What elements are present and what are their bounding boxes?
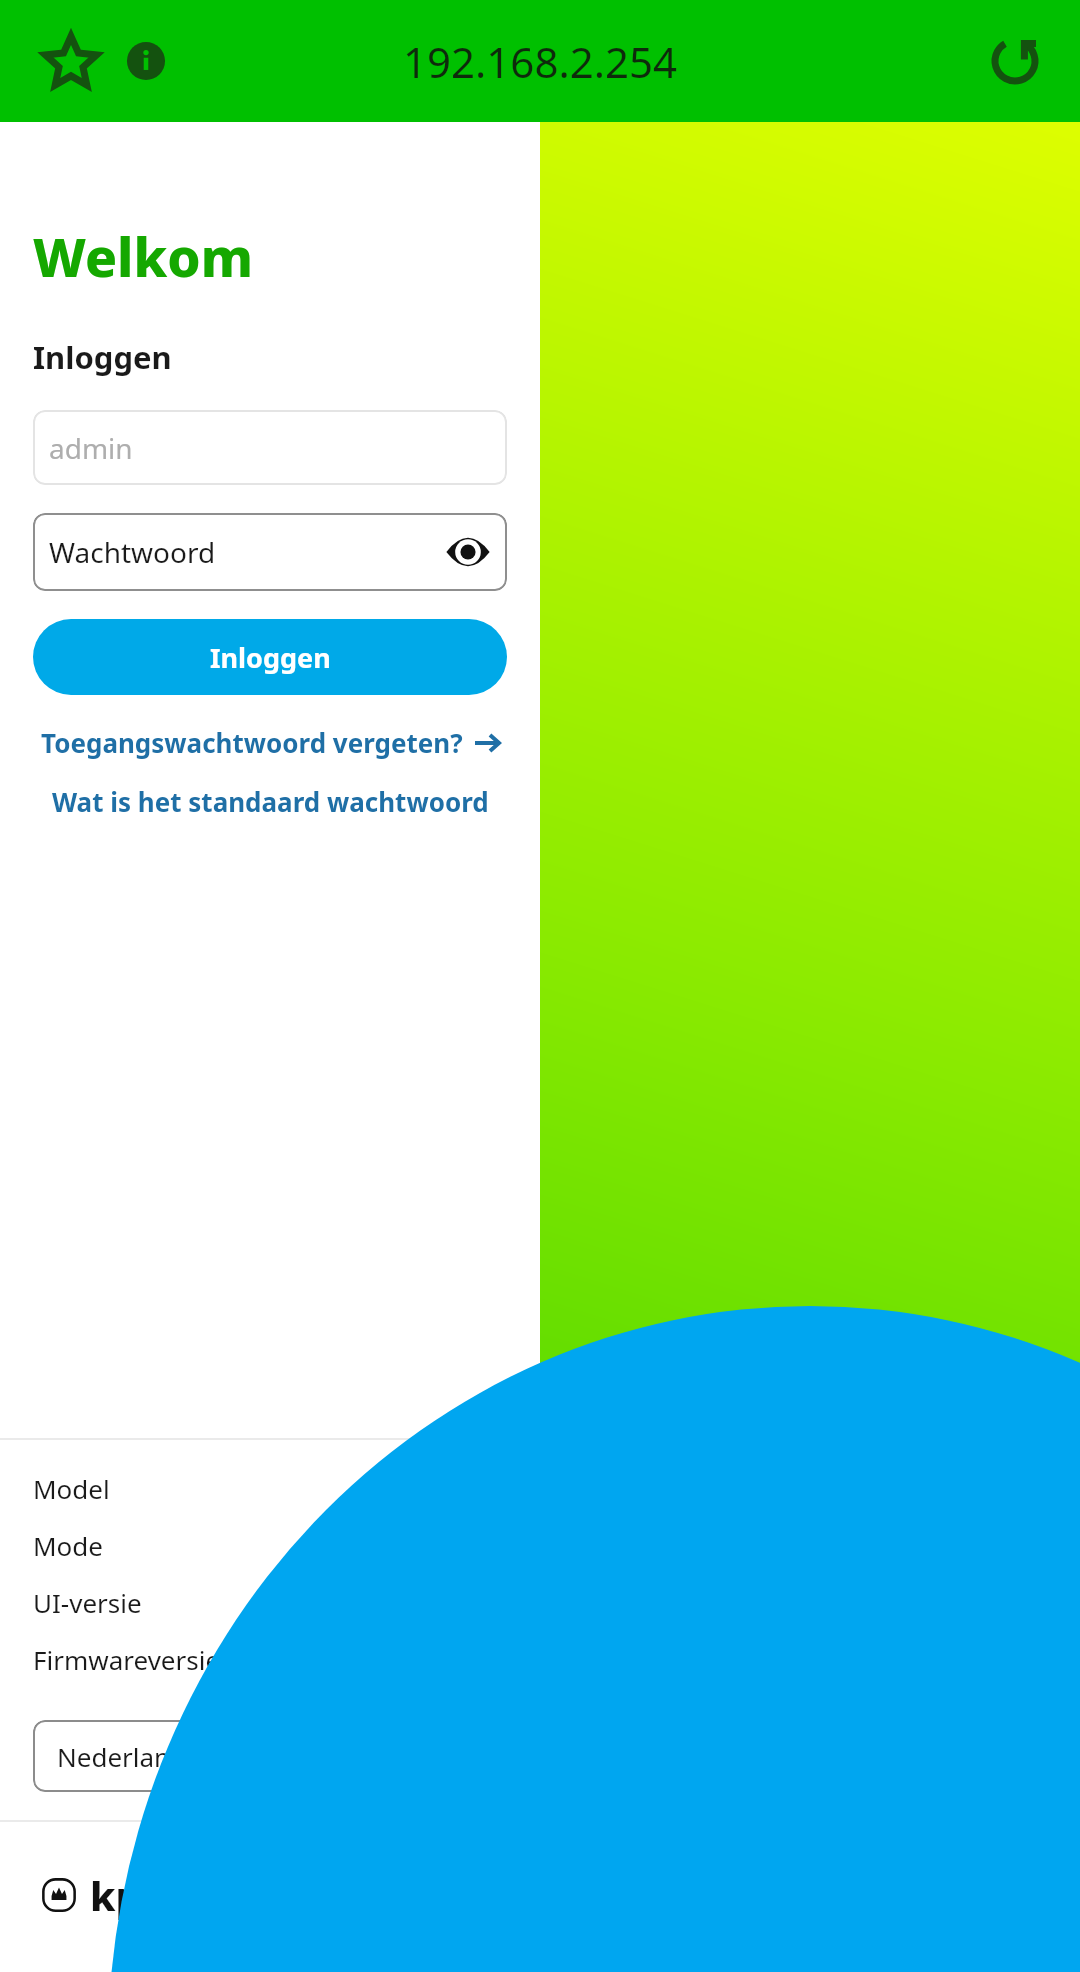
staticText: Wat is het standaard wachtwoord <box>52 784 489 819</box>
button[interactable]: Toegangswachtwoord vergeten? <box>0 725 540 760</box>
staticText: Nederlands <box>57 1739 199 1774</box>
staticText: kpn <box>90 1868 168 1922</box>
button[interactable]: Page info <box>118 33 174 89</box>
staticText: Wachtwoord <box>49 533 216 571</box>
staticText: Inloggen <box>210 639 331 676</box>
staticText: Welkom <box>33 220 253 292</box>
button[interactable]: Wachtwoord <box>33 513 507 591</box>
button[interactable]: Show password <box>441 525 495 579</box>
staticText: Firmwareversie <box>33 1642 221 1677</box>
staticText: Model <box>33 1471 110 1506</box>
staticText: Inloggen <box>33 336 172 378</box>
staticText: UI-versie <box>33 1585 142 1620</box>
button[interactable]: Inloggen <box>33 619 507 695</box>
button[interactable]: Bookmark <box>38 28 104 94</box>
button[interactable]: Refresh <box>978 24 1052 98</box>
staticText: 192.168.2.254 <box>403 33 678 90</box>
button[interactable]: Nederlands <box>33 1720 507 1792</box>
staticText: Mode <box>33 1528 103 1563</box>
staticText: admin <box>49 429 133 467</box>
button[interactable]: Wat is het standaard wachtwoord <box>0 784 540 819</box>
staticText: KPN Box 10 <box>366 1471 507 1506</box>
staticText: Toegangswachtwoord vergeten? <box>41 725 463 760</box>
button[interactable]: admin <box>33 410 507 485</box>
